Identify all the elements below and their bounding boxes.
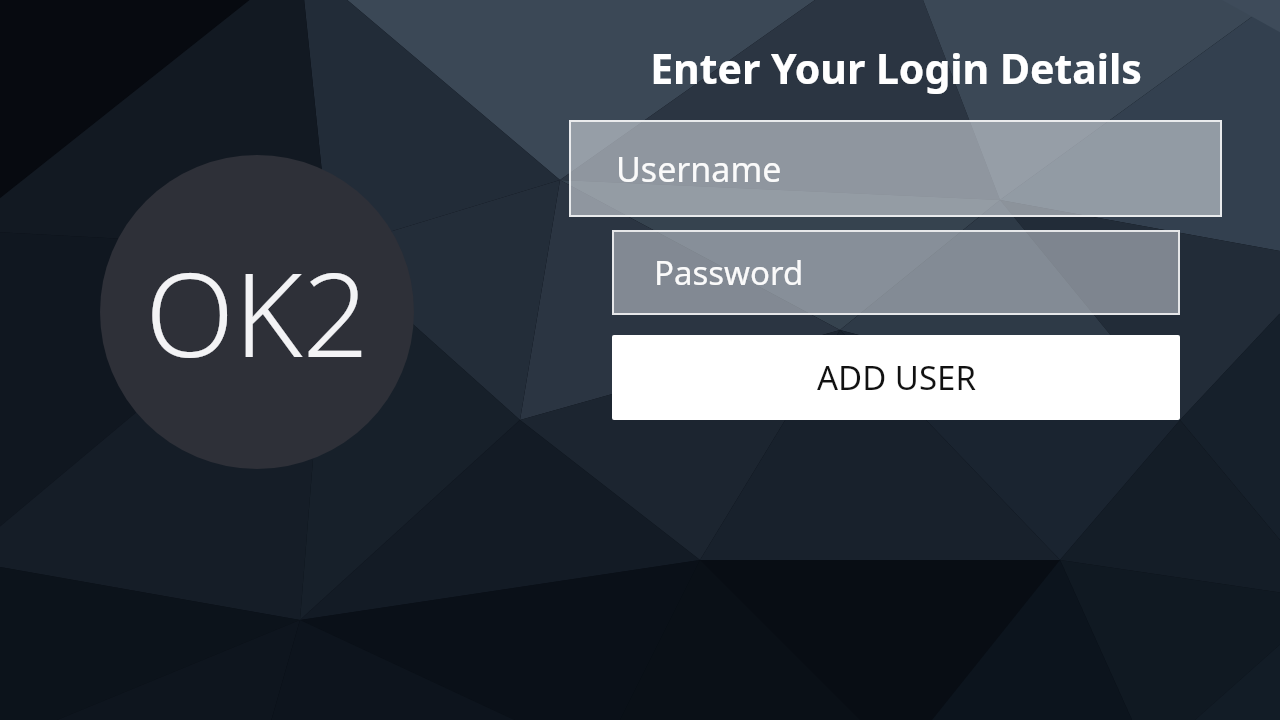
- staticText: Username: [616, 146, 782, 192]
- staticText: OK2: [145, 233, 369, 391]
- staticText: Password: [654, 250, 804, 295]
- staticText: Enter Your Login Details: [650, 40, 1142, 94]
- button[interactable]: Username: [569, 120, 1222, 217]
- button[interactable]: Password: [612, 230, 1180, 315]
- staticText: ADD USER: [817, 355, 976, 400]
- button[interactable]: Add User: [612, 335, 1180, 420]
